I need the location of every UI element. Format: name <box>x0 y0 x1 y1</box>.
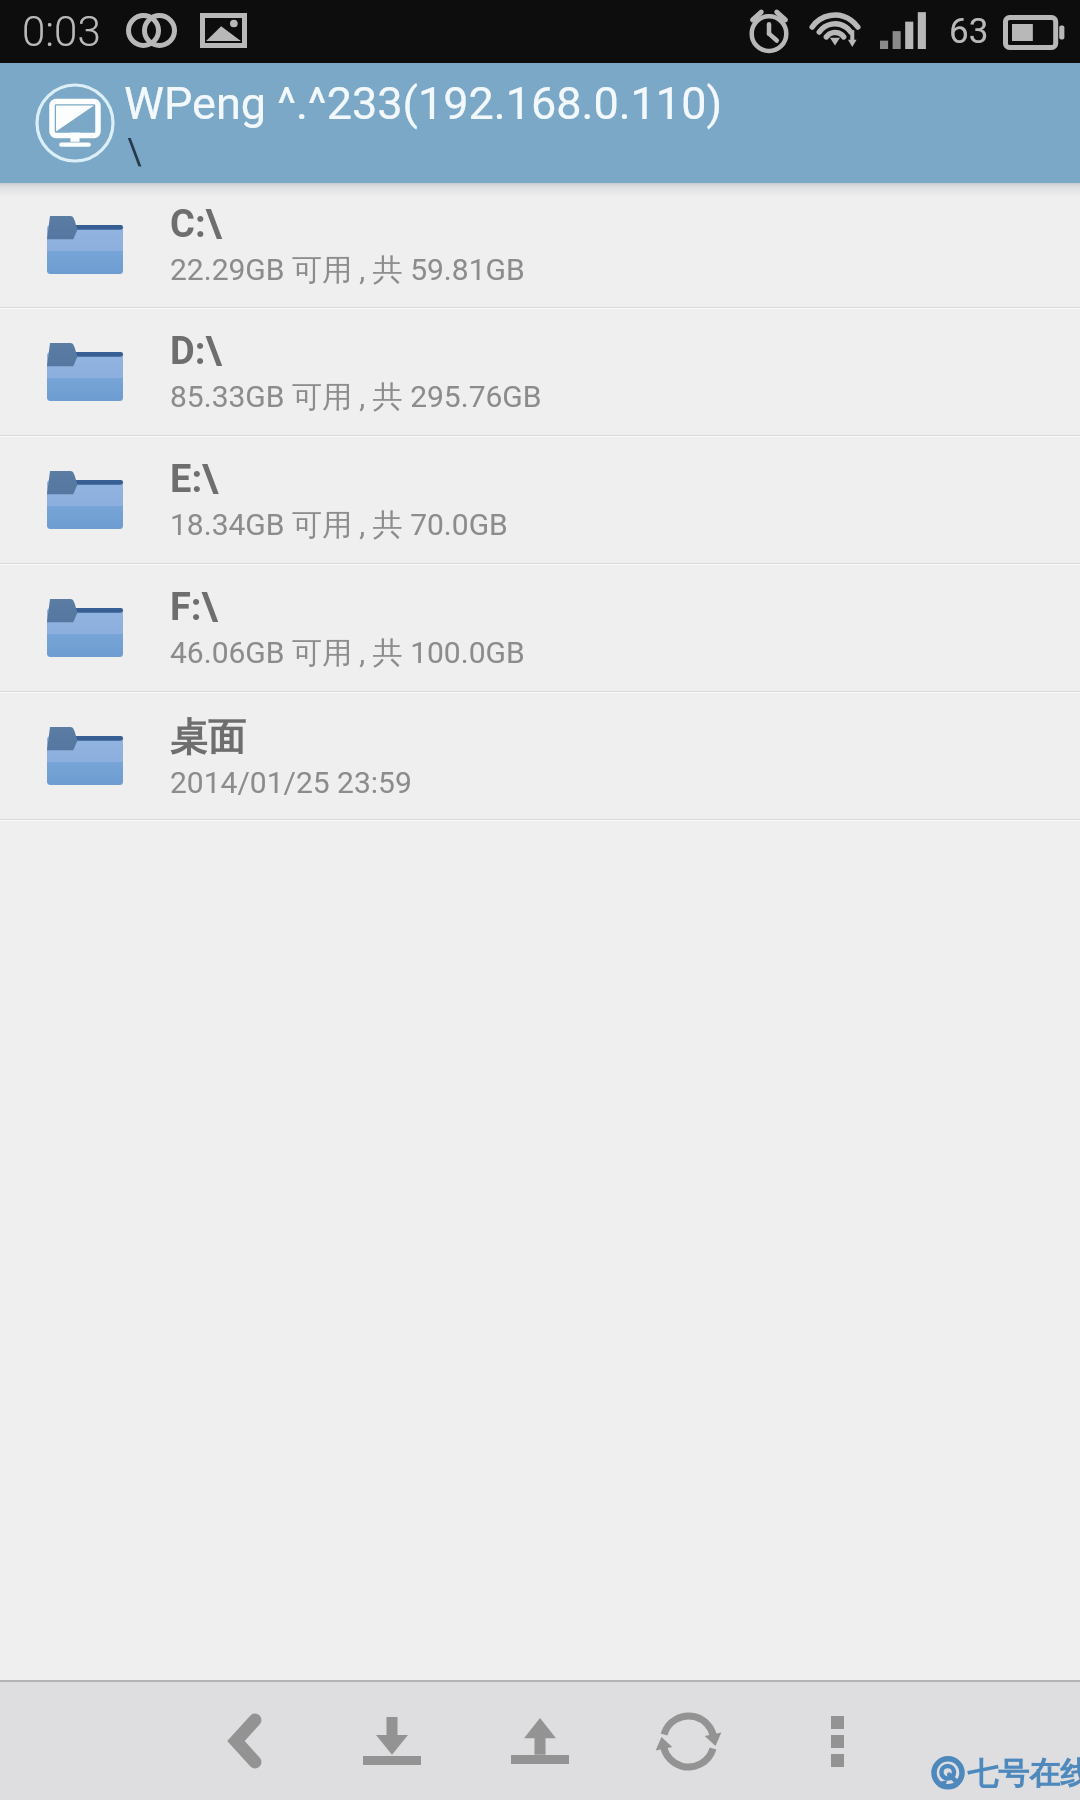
staticText: F:\ <box>170 585 218 630</box>
button[interactable]: F:\ <box>0 565 1080 691</box>
staticText: 0:03 <box>22 7 101 56</box>
staticText: 22.29GB 可用 , 共 59.81GB <box>170 251 525 289</box>
button[interactable]: C:\ <box>0 183 1080 307</box>
button[interactable]: Refresh <box>632 1682 744 1800</box>
staticText: C:\ <box>170 202 222 247</box>
button[interactable]: E:\ <box>0 437 1080 563</box>
button[interactable]: D:\ <box>0 309 1080 435</box>
staticText: 2014/01/25 23:59 <box>170 765 412 800</box>
button[interactable]: 桌面 <box>0 693 1080 819</box>
button[interactable]: More options <box>781 1682 893 1800</box>
button[interactable]: Download <box>336 1682 448 1800</box>
button[interactable]: Back <box>189 1682 301 1800</box>
staticText: D:\ <box>170 329 222 374</box>
staticText: 七号在线 <box>967 1754 1080 1793</box>
staticText: 46.06GB 可用 , 共 100.0GB <box>170 634 525 672</box>
button[interactable]: Upload <box>484 1682 596 1800</box>
staticText: 桌面 <box>170 713 246 761</box>
staticText: WPeng ^.^233(192.168.0.110) <box>124 77 723 130</box>
staticText: 85.33GB 可用 , 共 295.76GB <box>170 378 542 416</box>
staticText: 18.34GB 可用 , 共 70.0GB <box>170 506 508 544</box>
staticText: E:\ <box>170 457 219 502</box>
staticText: \ <box>127 131 142 173</box>
staticText: 63 <box>949 11 989 52</box>
